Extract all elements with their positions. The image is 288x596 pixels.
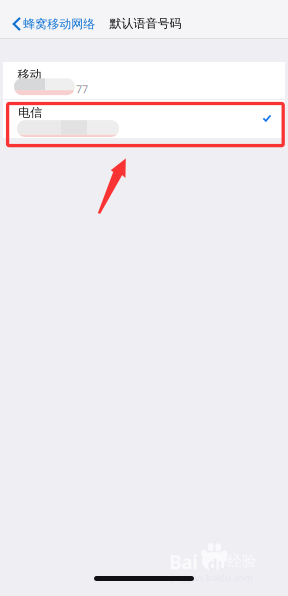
staticText: 默认语音号码: [109, 16, 181, 31]
staticText: 77: [76, 82, 88, 96]
button[interactable]: 移动: [3, 62, 285, 99]
button[interactable]: 电信: [3, 100, 285, 138]
staticText: 蜂窝移动网络: [23, 17, 95, 31]
staticText: jingyan.baidu.com: [171, 571, 253, 584]
staticText: 经验: [227, 552, 257, 570]
button[interactable]: 蜂窝移动网络: [0, 9, 100, 39]
staticText: du: [207, 553, 227, 575]
staticText: 电信: [18, 105, 42, 120]
staticText: Bai: [169, 550, 198, 574]
staticText: 移动: [18, 67, 42, 82]
